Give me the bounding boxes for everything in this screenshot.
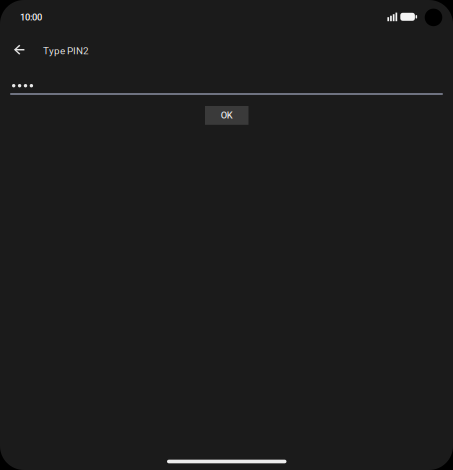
button[interactable]: Back (2, 33, 36, 67)
button[interactable]: OK (205, 106, 248, 125)
staticText: Type PIN2 (43, 45, 89, 57)
staticText: 10:00 (20, 12, 42, 23)
button[interactable]: PIN2 entry field (10, 83, 443, 99)
staticText: OK (221, 110, 233, 121)
